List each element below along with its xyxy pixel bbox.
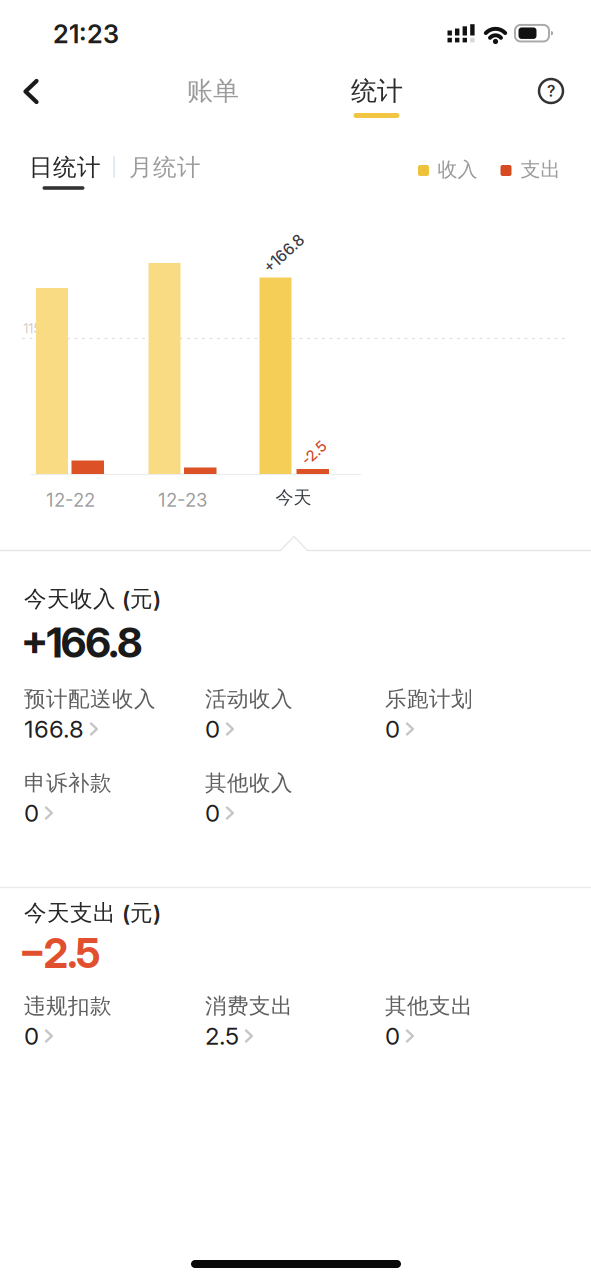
staticText: 申诉补款 <box>24 769 112 797</box>
button[interactable]: 账单 <box>173 67 253 115</box>
staticText: 活动收入 <box>205 685 293 713</box>
staticText: 今天 <box>275 486 311 509</box>
staticText: 12-22 <box>46 489 95 511</box>
staticText: 收入 <box>437 157 477 182</box>
button[interactable]: 乐跑计划 <box>385 681 555 747</box>
staticText: 0 <box>205 714 220 743</box>
staticText: 166.8 <box>24 714 84 743</box>
staticText: 0 <box>24 1021 39 1050</box>
button[interactable]: 今天 <box>275 486 311 509</box>
button[interactable]: Back <box>24 79 39 104</box>
button[interactable]: 违规扣款 <box>24 988 194 1054</box>
staticText: 乐跑计划 <box>385 685 473 713</box>
button[interactable]: 消费支出 <box>205 988 375 1054</box>
button[interactable]: 其他支出 <box>385 988 555 1054</box>
button[interactable]: Help <box>537 77 565 105</box>
staticText: -2.5 <box>300 444 328 462</box>
staticText: 预计配送收入 <box>24 685 156 713</box>
staticText: 统计 <box>351 75 403 107</box>
staticText: 支出 <box>520 157 560 182</box>
staticText: 0 <box>205 798 220 827</box>
button[interactable]: 统计 <box>337 67 417 115</box>
staticText: 日统计 <box>29 153 101 182</box>
staticText: | <box>111 156 117 178</box>
button[interactable]: 其他收入 <box>205 765 375 831</box>
staticText: 账单 <box>187 75 239 107</box>
staticText: 消费支出 <box>205 992 293 1020</box>
button[interactable]: 活动收入 <box>205 681 375 747</box>
button[interactable]: 预计配送收入 <box>24 681 194 747</box>
button[interactable]: 日统计 <box>29 153 149 182</box>
staticText: 2.5 <box>205 1021 239 1050</box>
staticText: +166.8 <box>259 244 308 263</box>
staticText: 月统计 <box>129 153 201 182</box>
button[interactable]: 月统计 <box>129 153 249 182</box>
staticText: 0 <box>385 1021 400 1050</box>
button[interactable]: 申诉补款 <box>24 765 194 831</box>
staticText: 今天支出 (元) <box>24 899 161 927</box>
staticText: 0 <box>24 798 39 827</box>
staticText: ? <box>547 82 555 100</box>
staticText: 今天收入 (元) <box>24 585 161 613</box>
staticText: +166.8 <box>21 617 143 668</box>
staticText: 115元 <box>23 319 55 336</box>
staticText: 0 <box>385 714 400 743</box>
staticText: 其他支出 <box>385 992 473 1020</box>
staticText: 违规扣款 <box>24 992 112 1020</box>
staticText: −2.5 <box>19 928 101 978</box>
staticText: 21:23 <box>53 19 119 49</box>
staticText: 12-23 <box>158 489 207 511</box>
staticText: 其他收入 <box>205 769 293 797</box>
